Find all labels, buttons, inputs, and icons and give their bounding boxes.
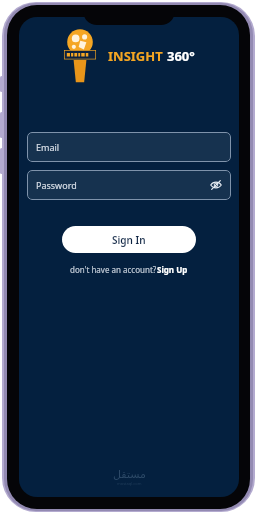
staticText: mostaql.com — [117, 481, 142, 486]
staticText: don't have an account? — [70, 264, 157, 275]
staticText: Email — [36, 141, 60, 153]
button[interactable]: Password — [27, 170, 231, 200]
button[interactable]: don't have an account? — [66, 262, 192, 277]
staticText: INSIGHT — [108, 47, 167, 65]
button[interactable]: Email — [27, 132, 231, 162]
staticText: Password — [36, 179, 77, 191]
button[interactable]: Sign In — [62, 226, 196, 253]
button[interactable]: Show password — [208, 177, 224, 193]
staticText: Sign In — [112, 233, 146, 247]
staticText: مستقل — [113, 468, 146, 481]
staticText: 360° — [167, 47, 195, 65]
staticText: Sign Up — [157, 264, 188, 275]
